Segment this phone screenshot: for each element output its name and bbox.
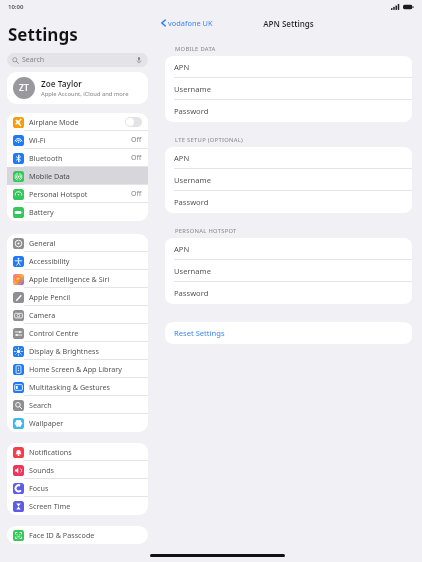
staticText: Bluetooth (29, 153, 63, 163)
staticText: General (29, 238, 56, 248)
button[interactable]: Bluetooth (7, 149, 148, 167)
button[interactable]: Airplane Mode toggle (125, 117, 142, 127)
button[interactable]: Password (165, 100, 412, 122)
staticText: Settings (8, 23, 78, 46)
button[interactable]: Search (7, 53, 148, 67)
staticText: LTE SETUP (OPTIONAL) (175, 136, 244, 144)
staticText: Apple Pencil (29, 292, 71, 302)
staticText: vodafone UK (168, 18, 213, 28)
button[interactable]: Apple Intelligence & Siri (7, 270, 148, 288)
button[interactable]: Home Screen & App Library (7, 360, 148, 378)
staticText: Camera (29, 310, 56, 320)
button[interactable]: Notifications (7, 443, 148, 461)
staticText: Notifications (29, 447, 72, 457)
button[interactable]: Battery (7, 203, 148, 221)
staticText: APN (174, 244, 190, 254)
staticText: Accessibility (29, 256, 70, 266)
staticText: Display & Brightness (29, 346, 99, 356)
staticText: Password (174, 106, 209, 116)
button[interactable]: Control Centre (7, 324, 148, 342)
button[interactable]: Camera (7, 306, 148, 324)
staticText: APN (174, 62, 190, 72)
button[interactable]: Wallpaper (7, 414, 148, 432)
staticText: 10:00 (8, 3, 24, 11)
staticText: Multitasking & Gestures (29, 382, 110, 392)
button[interactable]: Apple Pencil (7, 288, 148, 306)
staticText: MOBILE DATA (175, 45, 216, 53)
staticText: Control Centre (29, 328, 79, 338)
staticText: Focus (29, 483, 49, 493)
staticText: Off (131, 153, 142, 163)
button[interactable]: Password (165, 191, 412, 213)
staticText: APN Settings (263, 18, 314, 29)
button[interactable]: Reset Settings (165, 322, 412, 344)
staticText: Personal Hotspot (29, 189, 88, 199)
button[interactable]: Username (165, 169, 412, 191)
staticText: Username (174, 175, 211, 185)
staticText: Wallpaper (29, 418, 64, 428)
staticText: ZT (19, 82, 29, 94)
staticText: Airplane Mode (29, 117, 79, 127)
button[interactable]: APN (165, 238, 412, 260)
button[interactable]: Focus (7, 479, 148, 497)
staticText: Search (29, 400, 52, 410)
staticText: Password (174, 288, 209, 298)
button[interactable]: Wi-Fi (7, 131, 148, 149)
button[interactable]: Sounds (7, 461, 148, 479)
staticText: Off (131, 135, 142, 145)
button[interactable]: APN (165, 56, 412, 78)
staticText: Home Screen & App Library (29, 364, 122, 374)
staticText: Sounds (29, 465, 55, 475)
button[interactable]: General (7, 234, 148, 252)
staticText: Off (131, 189, 142, 199)
button[interactable]: Display & Brightness (7, 342, 148, 360)
button[interactable]: Username (165, 260, 412, 282)
staticText: Mobile Data (29, 171, 70, 181)
button[interactable]: Accessibility (7, 252, 148, 270)
staticText: Reset Settings (174, 328, 225, 338)
staticText: Zoe Taylor (41, 78, 82, 89)
staticText: Screen Time (29, 501, 71, 511)
button[interactable]: Search (7, 396, 148, 414)
button[interactable]: Password (165, 282, 412, 304)
staticText: Apple Account, iCloud and more (41, 90, 129, 98)
staticText: Face ID & Passcode (29, 530, 95, 540)
staticText: Wi-Fi (29, 135, 46, 145)
button[interactable]: ZT (7, 72, 148, 104)
button[interactable]: Username (165, 78, 412, 100)
button[interactable]: Face ID & Passcode (7, 526, 148, 544)
button[interactable]: Mobile Data (7, 167, 148, 185)
button[interactable]: APN (165, 147, 412, 169)
staticText: APN (174, 153, 190, 163)
staticText: Apple Intelligence & Siri (29, 274, 110, 284)
staticText: Password (174, 197, 209, 207)
staticText: Battery (29, 207, 54, 217)
button[interactable]: Multitasking & Gestures (7, 378, 148, 396)
button[interactable]: vodafone UK (158, 16, 216, 30)
button[interactable]: Personal Hotspot (7, 185, 148, 203)
staticText: Search (22, 55, 45, 65)
button[interactable]: Screen Time (7, 497, 148, 515)
button[interactable]: Airplane Mode (7, 113, 148, 131)
staticText: Username (174, 84, 211, 94)
staticText: PERSONAL HOTSPOT (175, 227, 237, 235)
staticText: Username (174, 266, 211, 276)
